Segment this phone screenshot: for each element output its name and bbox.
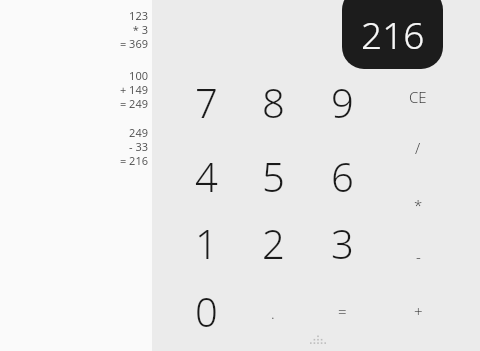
staticText: 1 (195, 216, 218, 270)
staticText: 8 (262, 75, 285, 129)
button[interactable]: Clear entry (395, 77, 441, 117)
staticText: 5 (262, 149, 285, 203)
button[interactable]: Equals (319, 291, 365, 331)
button[interactable]: 4 (178, 148, 234, 204)
staticText: - (416, 246, 421, 266)
button[interactable]: 5 (245, 148, 301, 204)
button[interactable]: 249 (18, 125, 148, 167)
staticText: - 33 (18, 139, 148, 153)
staticText: 2 (262, 216, 285, 270)
staticText: 7 (195, 75, 218, 129)
staticText: / (415, 138, 421, 158)
button[interactable]: 0 (178, 283, 234, 339)
staticText: CE (409, 87, 427, 107)
staticText: = 249 (18, 96, 148, 110)
button[interactable]: 8 (245, 74, 301, 130)
staticText: 123 (18, 8, 148, 22)
button[interactable]: Result 216 (342, 0, 443, 69)
button[interactable]: 7 (178, 74, 234, 130)
staticText: = 216 (18, 153, 148, 167)
button[interactable]: 1 (178, 215, 234, 271)
staticText: . (271, 303, 275, 323)
staticText: 100 (18, 68, 148, 82)
staticText: 9 (331, 75, 354, 129)
staticText: * (414, 195, 423, 215)
staticText: 216 (361, 9, 425, 59)
staticText: 6 (331, 149, 354, 203)
button[interactable]: 2 (245, 215, 301, 271)
staticText: = (338, 301, 347, 321)
button[interactable]: Plus (395, 291, 441, 331)
staticText: + 149 (18, 82, 148, 96)
button[interactable]: 9 (314, 74, 370, 130)
staticText: = 369 (18, 36, 148, 50)
button[interactable]: 123 (18, 8, 148, 50)
staticText: * 3 (18, 22, 148, 36)
button[interactable]: Minus (395, 236, 441, 276)
staticText: 4 (195, 149, 218, 203)
staticText: 3 (331, 216, 354, 270)
button[interactable]: 3 (314, 215, 370, 271)
button[interactable]: 6 (314, 148, 370, 204)
button[interactable]: Divide (395, 128, 441, 168)
button[interactable]: Multiply (395, 185, 441, 225)
staticText: 0 (195, 284, 218, 338)
button[interactable]: 100 (18, 68, 148, 110)
staticText: 249 (18, 125, 148, 139)
staticText: + (414, 301, 423, 321)
